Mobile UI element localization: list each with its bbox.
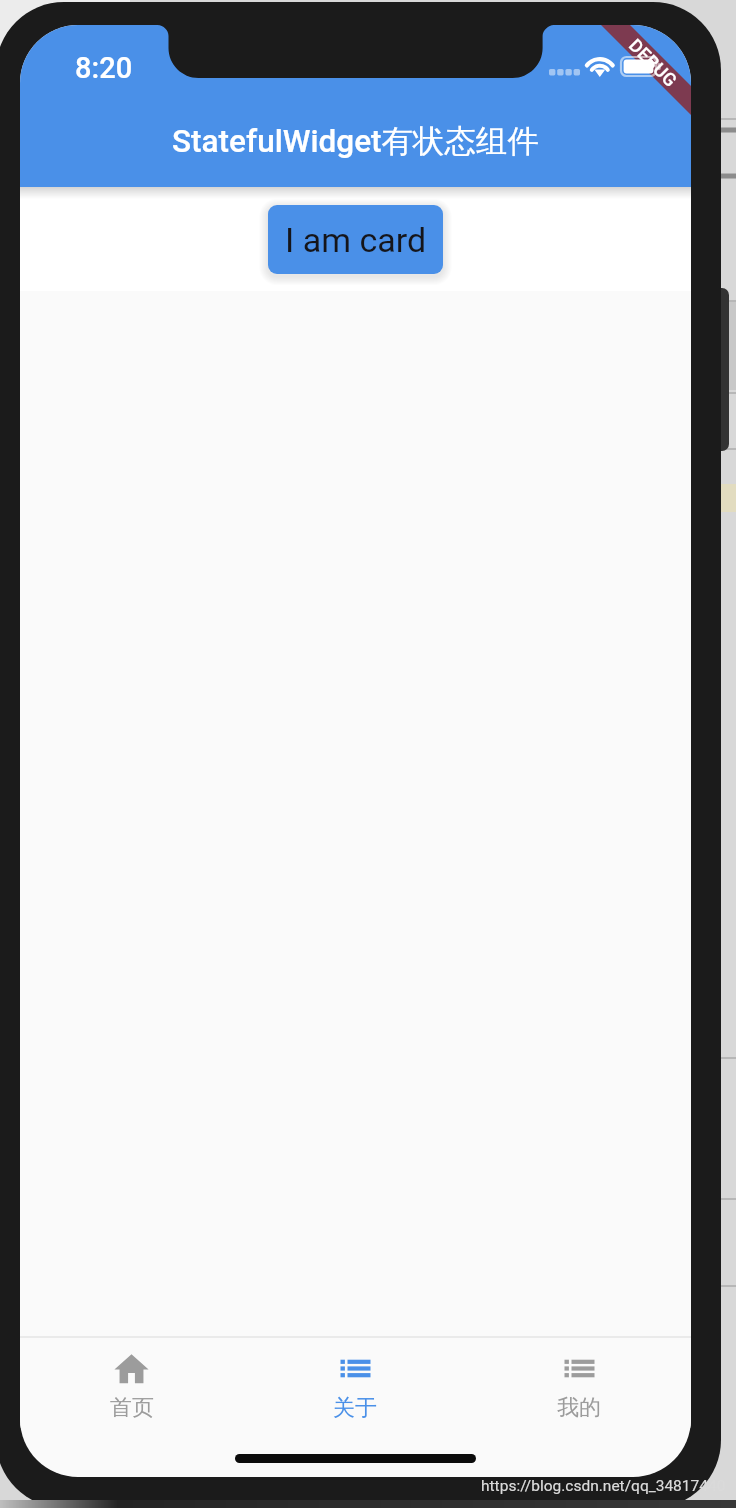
staticText: I am card	[285, 220, 427, 260]
staticText: 我的	[557, 1394, 601, 1422]
staticText: 首页	[110, 1394, 154, 1422]
staticText: https://blog.csdn.net/qq_34817440	[481, 1477, 726, 1495]
button[interactable]: I am card	[268, 205, 443, 274]
button[interactable]: 关于	[243, 1338, 467, 1428]
staticText: 8:20	[75, 51, 133, 85]
staticText: StatefulWidget有状态组件	[172, 122, 540, 162]
staticText: 关于	[333, 1394, 377, 1422]
button[interactable]: 首页	[20, 1338, 243, 1428]
button[interactable]: 我的	[467, 1338, 691, 1428]
